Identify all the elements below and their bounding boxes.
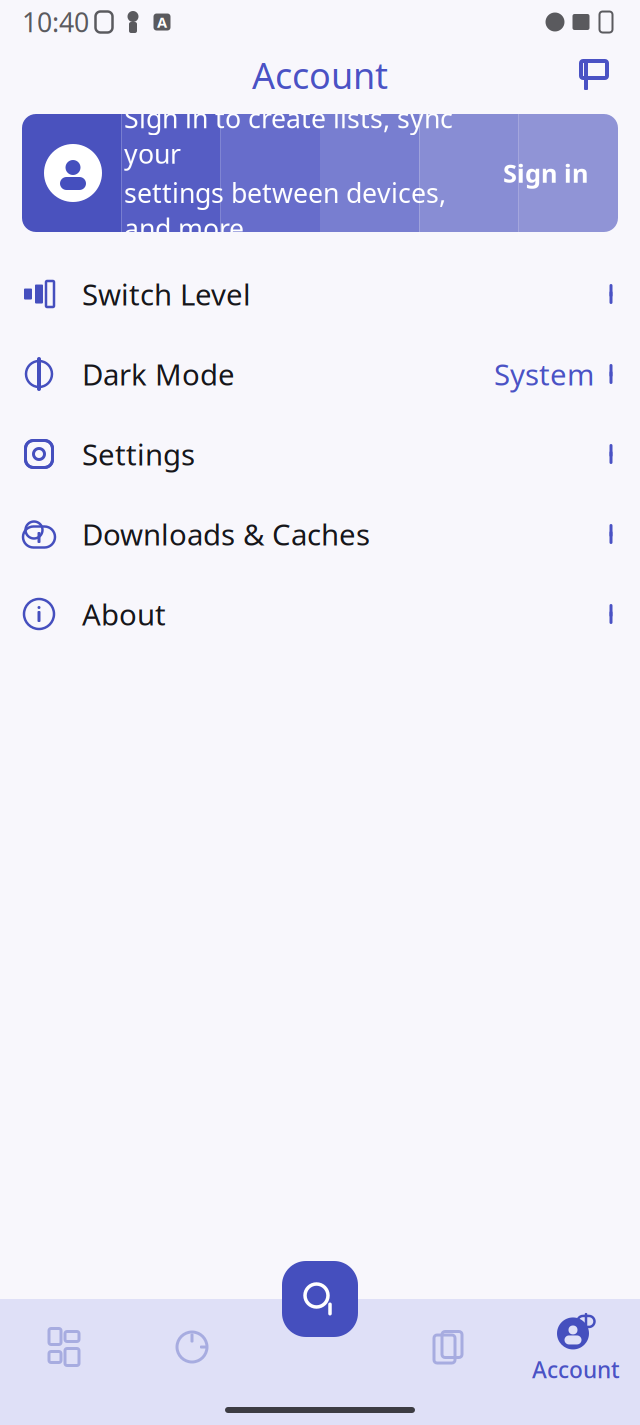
button[interactable]: Settings	[0, 414, 640, 494]
button[interactable]: Account	[512, 1299, 640, 1395]
button[interactable]: Dark Mode	[0, 334, 640, 414]
button[interactable]: Sign in to create lists, sync your	[22, 114, 618, 232]
staticText: A	[157, 12, 167, 32]
staticText: Sign in	[503, 156, 588, 190]
staticText: Dark Mode	[82, 354, 235, 393]
button[interactable]: Browse	[0, 1299, 128, 1395]
staticText: settings between devices, and more.	[124, 175, 446, 246]
staticText: Switch Level	[82, 274, 251, 313]
button[interactable]: Search	[282, 1261, 358, 1337]
staticText: Settings	[82, 434, 195, 473]
staticText: Downloads & Caches	[82, 514, 370, 553]
button[interactable]: About	[0, 574, 640, 654]
staticText: 10:40	[22, 4, 89, 40]
staticText: System	[494, 354, 594, 393]
button[interactable]: History	[128, 1299, 256, 1395]
staticText: Account	[532, 1354, 620, 1384]
staticText: About	[82, 594, 166, 633]
staticText: Account	[252, 51, 388, 99]
button[interactable]: Bookmarks	[384, 1299, 512, 1395]
button[interactable]: Report	[576, 53, 620, 97]
staticText: Sign in to create lists, sync your	[124, 100, 453, 171]
button[interactable]: Downloads & Caches	[0, 494, 640, 574]
button[interactable]: Switch Level	[0, 254, 640, 334]
button[interactable]: Search	[256, 1299, 384, 1395]
